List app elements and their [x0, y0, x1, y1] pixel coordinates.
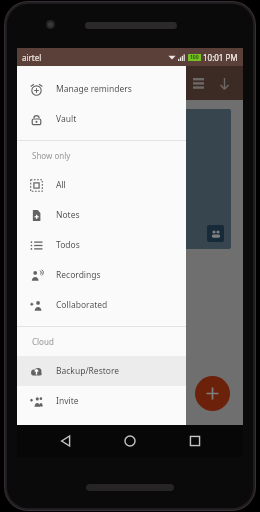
staticText: Notes	[36, 130, 59, 141]
button[interactable]: All	[17, 170, 186, 200]
button[interactable]: Recent apps	[179, 425, 211, 457]
button[interactable]: Recordings	[17, 260, 186, 290]
staticText: This is DONE	[36, 180, 84, 191]
button[interactable]: Vault	[17, 104, 186, 134]
staticText: 10:01 PM	[203, 52, 238, 63]
staticText: All	[56, 179, 66, 191]
staticText: Manage reminders	[56, 83, 132, 95]
staticText: Show only	[32, 150, 71, 161]
button[interactable]: Created 19 Jun 21:49 PM	[29, 109, 231, 249]
staticText: Vault	[56, 113, 77, 125]
staticText: Collaborated	[56, 299, 108, 311]
staticText: Notes	[56, 209, 80, 221]
button[interactable]: Download	[211, 70, 237, 96]
staticText: Todos	[56, 239, 80, 251]
button[interactable]: Notes	[17, 200, 186, 230]
staticText: Recordings	[56, 269, 101, 281]
staticText: Cloud	[32, 336, 54, 347]
staticText: 100	[190, 54, 199, 61]
button[interactable]: Invite	[17, 386, 186, 416]
button[interactable]: Collaborated	[17, 290, 186, 320]
staticText: Invite	[56, 395, 79, 407]
button[interactable]: Home	[114, 425, 146, 457]
staticText: Created 19 Jun 21:49 PM	[36, 116, 113, 126]
button[interactable]: List view	[185, 70, 211, 96]
button[interactable]: Todos	[17, 230, 186, 260]
button[interactable]: Add note	[195, 376, 230, 411]
staticText: Backup/Restore	[56, 365, 120, 377]
button[interactable]: Back	[50, 425, 82, 457]
button[interactable]: Backup/Restore	[17, 356, 186, 386]
staticText: airtel	[22, 52, 42, 63]
button[interactable]: Manage reminders	[17, 74, 186, 104]
